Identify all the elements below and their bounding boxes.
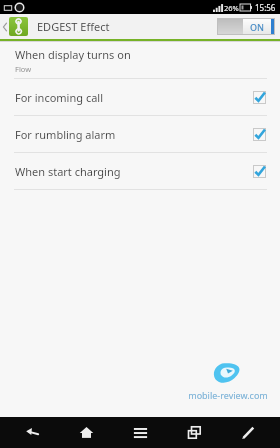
button[interactable]: Master toggle, On xyxy=(217,18,275,35)
staticText: Flow xyxy=(15,64,32,74)
staticText: 15:56 xyxy=(255,2,276,13)
button[interactable]: Menu xyxy=(118,417,162,448)
staticText: When display turns on xyxy=(15,47,131,62)
button[interactable]: When start charging xyxy=(0,153,280,189)
staticText: EDGEST Effect xyxy=(37,19,110,34)
button[interactable]: Recent apps xyxy=(172,417,216,448)
button[interactable]: Edit xyxy=(226,417,270,448)
staticText: For rumbling alarm xyxy=(15,127,253,142)
button[interactable]: Navigate up xyxy=(0,14,30,39)
button[interactable]: For rumbling alarm xyxy=(0,116,280,152)
button[interactable]: Home xyxy=(64,417,108,448)
staticText: ON xyxy=(250,21,265,33)
staticText: For incoming call xyxy=(15,90,253,105)
staticText: 26% xyxy=(224,3,239,13)
button[interactable]: For incoming call xyxy=(0,79,280,115)
button[interactable]: When display turns on xyxy=(0,42,280,78)
staticText: mobile-review.com xyxy=(188,389,268,401)
staticText: When start charging xyxy=(15,164,253,179)
button[interactable]: Back xyxy=(10,417,54,448)
